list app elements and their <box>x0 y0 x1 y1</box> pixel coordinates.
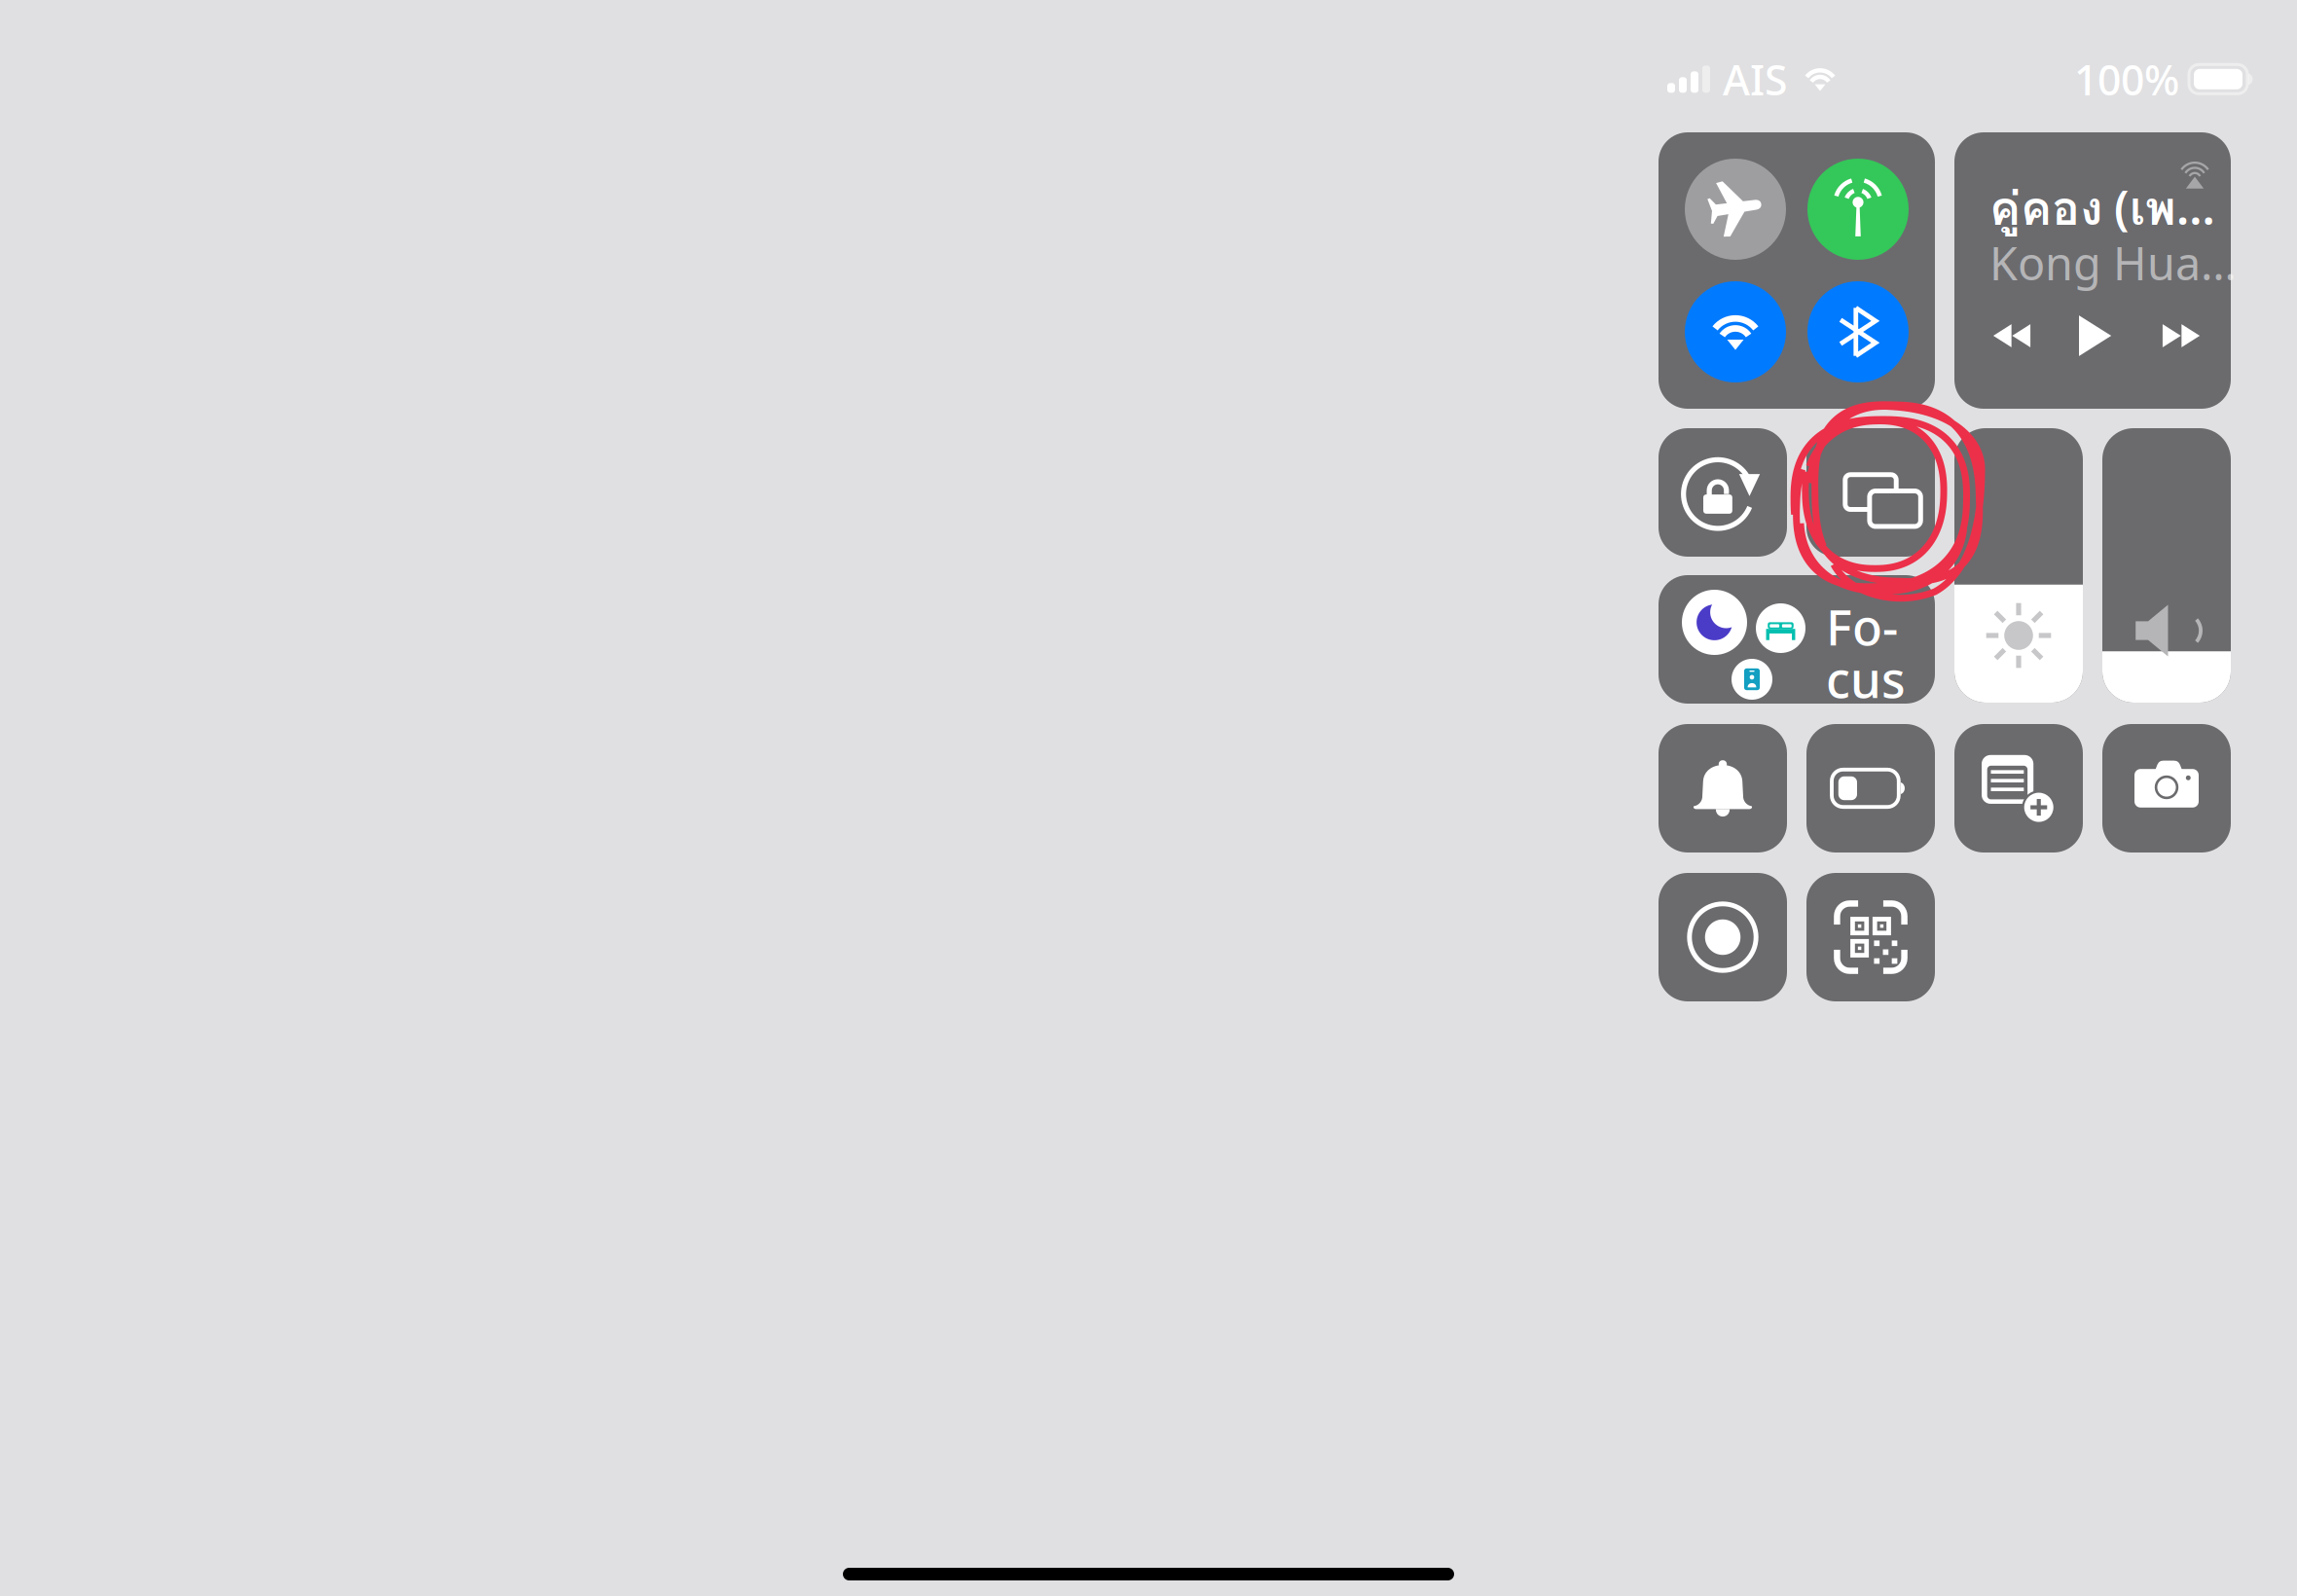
staticText: cus <box>1826 646 1906 712</box>
button[interactable]: Brightness <box>1954 428 2083 703</box>
button[interactable]: Camera <box>2102 724 2231 852</box>
button[interactable]: Rotation Lock <box>1659 428 1787 557</box>
button[interactable]: Screen Mirroring <box>1806 428 1935 557</box>
button[interactable]: Cellular Data <box>1807 159 1909 260</box>
button[interactable]: Screen Recording <box>1659 873 1787 1001</box>
staticText: 100% <box>2074 52 2179 107</box>
button[interactable]: Focus <box>1659 575 1935 704</box>
button[interactable]: Code Scanner <box>1806 873 1935 1001</box>
button[interactable]: Volume <box>2102 428 2231 703</box>
button[interactable]: Wi-Fi <box>1685 281 1786 382</box>
button[interactable]: New Note <box>1954 724 2083 852</box>
staticText: Kong Hua… <box>1989 233 2237 293</box>
button[interactable]: Fast Forward <box>2144 306 2218 366</box>
button[interactable]: Rewind <box>1975 306 2049 366</box>
staticText: Fo- <box>1826 594 1898 659</box>
staticText: AIS <box>1723 52 1787 107</box>
button[interactable]: Airplane Mode <box>1685 159 1786 260</box>
button[interactable]: Play <box>2060 306 2133 366</box>
button[interactable]: Silent Mode <box>1659 724 1787 852</box>
button[interactable]: Bluetooth <box>1807 281 1909 382</box>
staticText: คู่คอง (เพ… <box>1989 172 2215 244</box>
button[interactable]: Low Power Mode <box>1806 724 1935 852</box>
